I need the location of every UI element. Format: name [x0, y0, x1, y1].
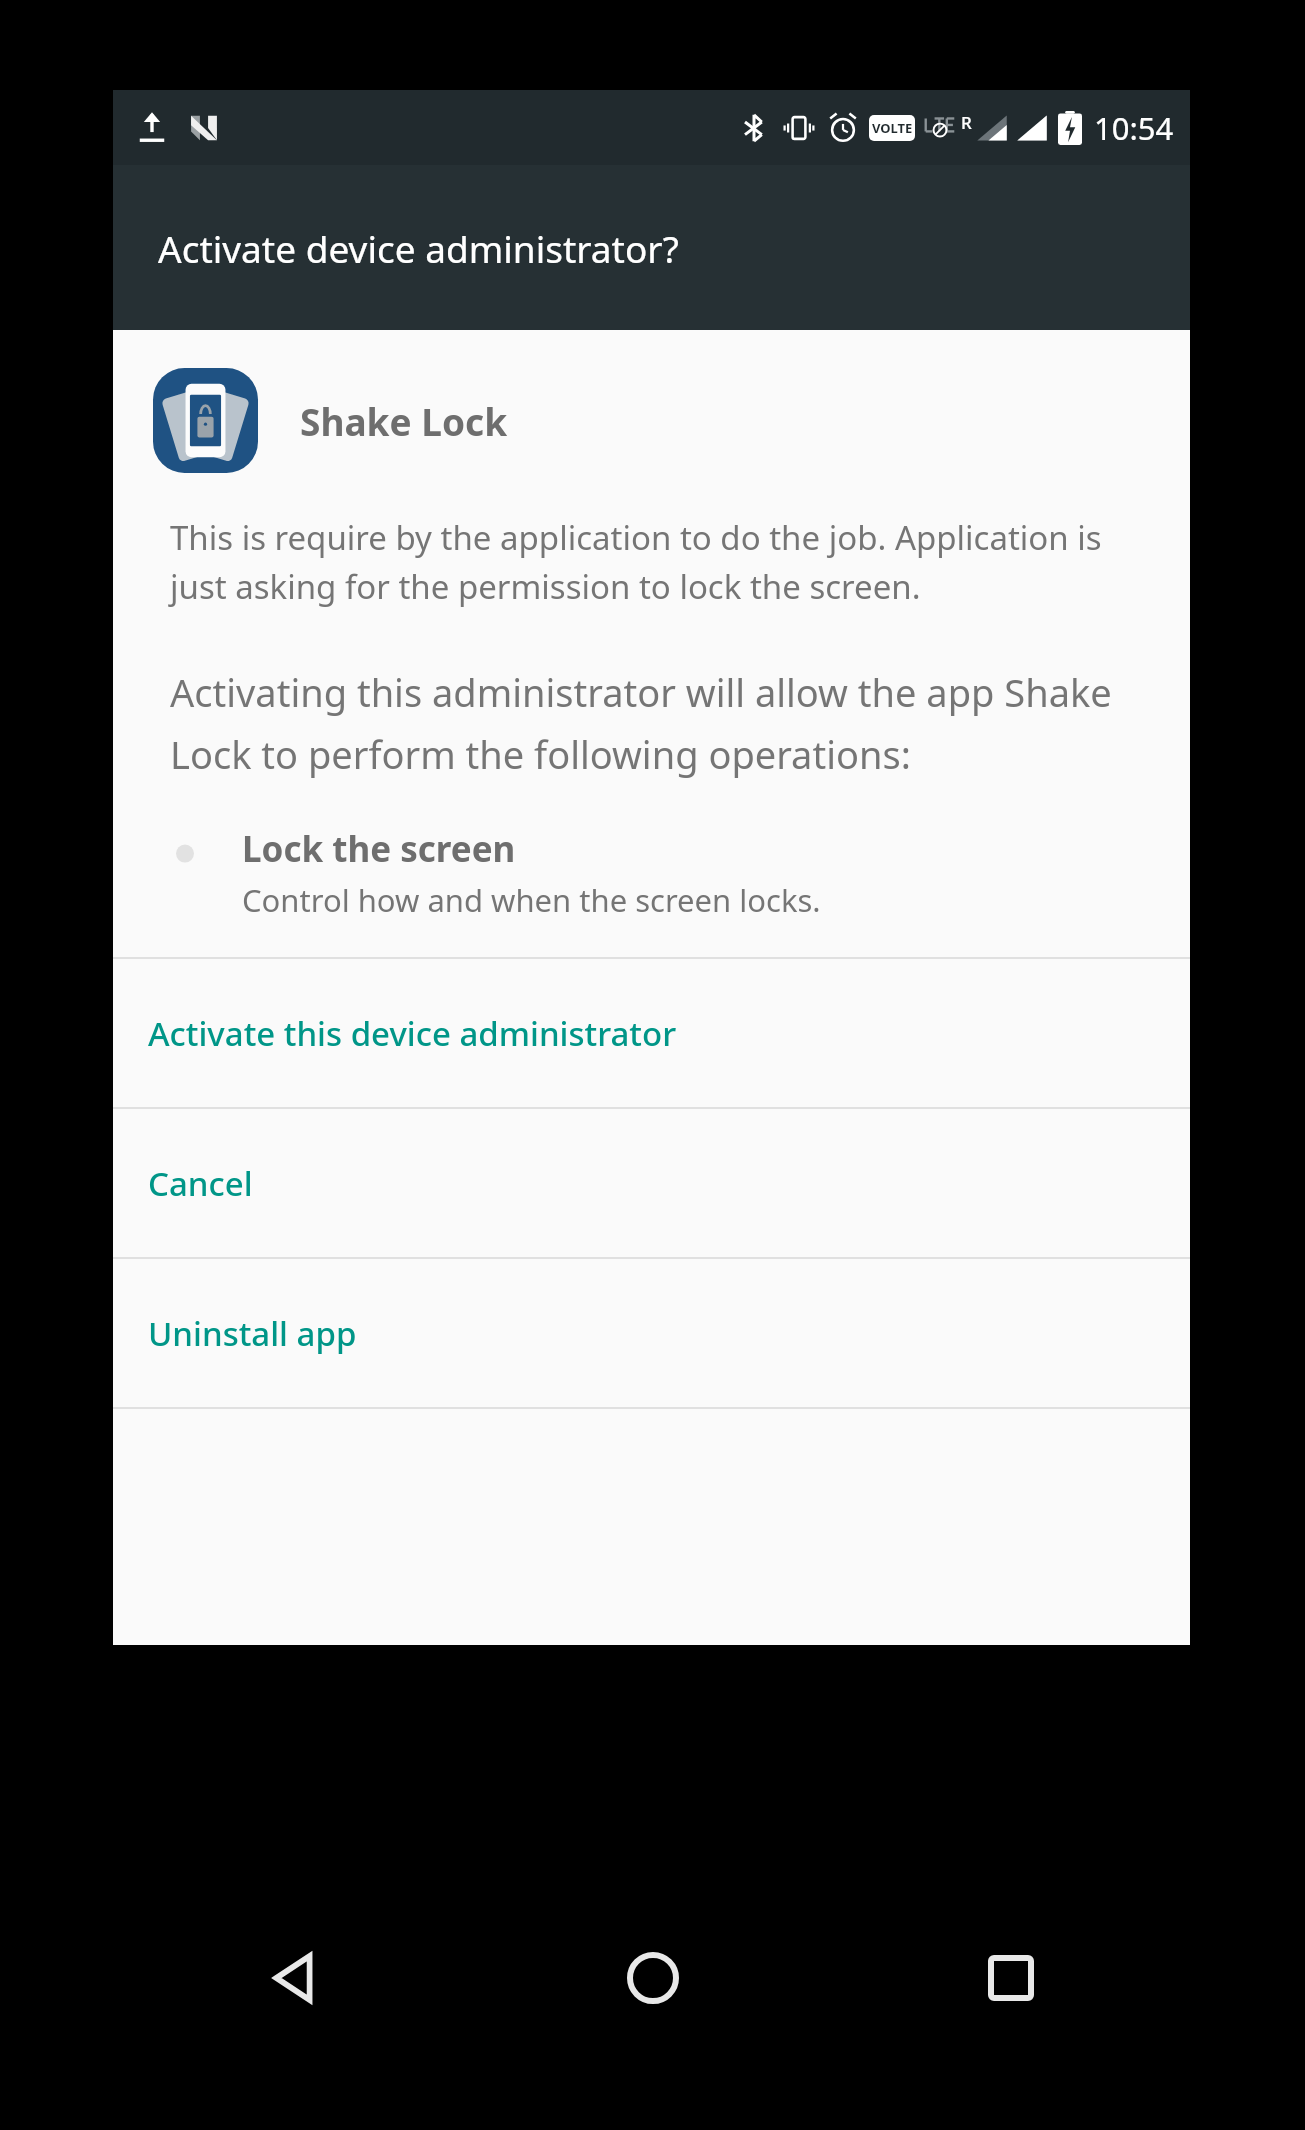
- staticText: VOLTE: [872, 119, 913, 137]
- staticText: Shake Lock: [300, 396, 508, 446]
- staticText: Control how and when the screen locks.: [242, 879, 821, 921]
- button[interactable]: Uninstall app: [113, 1259, 1190, 1407]
- staticText: Cancel: [148, 1161, 253, 1206]
- staticText: Activate this device administrator: [148, 1011, 677, 1056]
- button[interactable]: Cancel: [113, 1109, 1190, 1257]
- staticText: 10:54: [1094, 107, 1174, 149]
- staticText: Activate device administrator?: [158, 223, 679, 273]
- button[interactable]: Home: [588, 1913, 718, 2043]
- staticText: Activating this administrator will allow…: [170, 666, 1142, 781]
- staticText: Uninstall app: [148, 1311, 357, 1356]
- button[interactable]: Recent apps: [946, 1913, 1076, 2043]
- staticText: Lock the screen: [242, 825, 516, 873]
- staticText: This is require by the application to do…: [170, 515, 1140, 608]
- button[interactable]: Activate this device administrator: [113, 959, 1190, 1107]
- staticText: R: [961, 111, 972, 134]
- button[interactable]: Back: [229, 1913, 359, 2043]
